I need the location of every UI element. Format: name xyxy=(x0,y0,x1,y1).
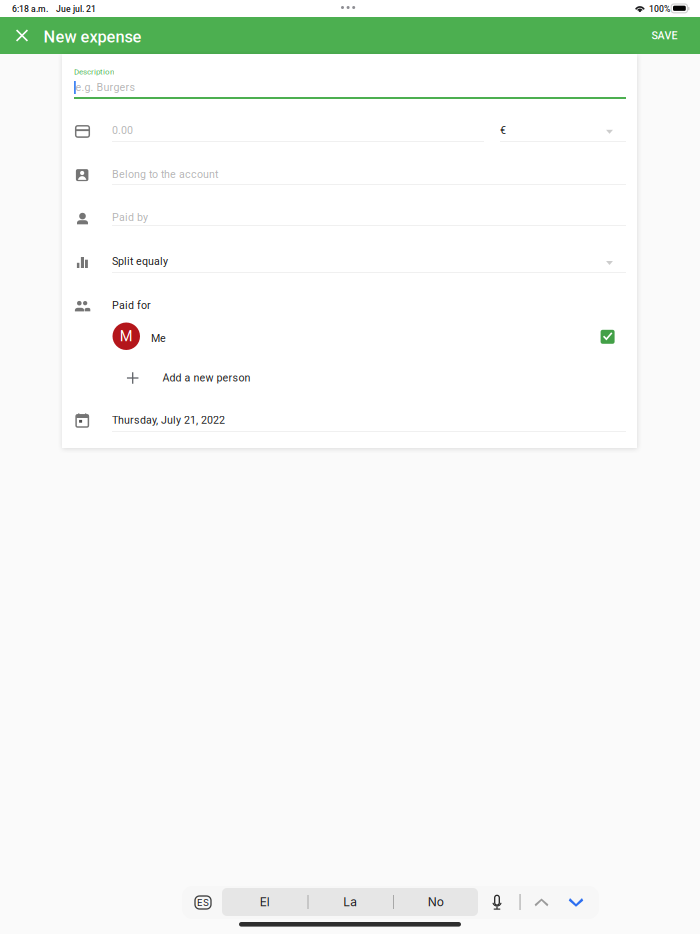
button[interactable]: Close xyxy=(0,0,38,37)
staticText: ES xyxy=(197,897,209,908)
button[interactable]: Thursday, July 21, 2022 xyxy=(0,0,575,30)
staticText: Me xyxy=(151,332,166,345)
staticText: 100% xyxy=(649,4,670,14)
staticText: € xyxy=(500,124,506,136)
button[interactable]: SAVE xyxy=(0,0,48,37)
button[interactable]: Split mode xyxy=(0,0,34,26)
button[interactable]: Add a new person xyxy=(0,0,514,26)
staticText: Paid by xyxy=(112,211,148,223)
staticText: Jue jul. 21 xyxy=(56,4,96,14)
staticText: El xyxy=(260,895,270,909)
staticText: La xyxy=(343,895,357,909)
staticText: Split equaly xyxy=(112,255,168,267)
button[interactable]: Dictate xyxy=(0,0,34,33)
staticText: M xyxy=(120,328,133,345)
staticText: Paid for xyxy=(112,299,151,311)
button[interactable]: La xyxy=(0,0,85,28)
staticText: Thursday, July 21, 2022 xyxy=(112,414,225,426)
staticText: 6:18 a.m. xyxy=(12,4,48,14)
staticText: Add a new person xyxy=(162,371,250,384)
button[interactable]: M xyxy=(0,0,514,32)
staticText: SAVE xyxy=(651,29,677,42)
button[interactable]: Keyboard language xyxy=(0,0,34,33)
button[interactable]: Currency xyxy=(0,0,34,26)
button[interactable]: Hide keyboard xyxy=(0,0,30,33)
button[interactable]: Previous field xyxy=(0,0,30,33)
staticText: No xyxy=(428,895,444,909)
staticText: Belong to the account xyxy=(112,168,218,180)
button[interactable]: El xyxy=(0,0,85,28)
staticText: e.g. Burgers xyxy=(75,81,135,93)
staticText: Description xyxy=(74,67,114,76)
staticText: 0.00 xyxy=(112,124,133,136)
staticText: New expense xyxy=(44,27,142,46)
button[interactable]: No xyxy=(0,0,85,28)
